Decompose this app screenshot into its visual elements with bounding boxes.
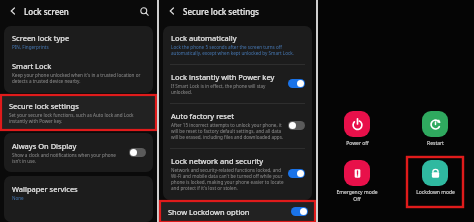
button[interactable]: Wallpaper services [4,180,153,205]
staticText: Lock instantly with Power key [171,72,275,82]
button[interactable]: Always On Display [4,137,153,168]
staticText: Lock network and security [171,156,264,166]
button[interactable]: Secure lock settings [1,97,156,128]
staticText: Lock the phone 5 seconds after the scree… [171,44,305,56]
button[interactable]: Emergency mode [318,157,396,202]
button[interactable]: Power off [318,108,396,147]
staticText: Show Lockdown option [168,207,250,216]
button[interactable]: Show Lockdown option [160,203,315,220]
button[interactable]: Toggle on [291,207,308,216]
staticText: Show a clock and notifications when your… [12,152,125,164]
button[interactable]: Emergency mode [344,160,370,186]
button[interactable]: Search [137,4,151,18]
staticText: Always On Display [12,141,77,151]
button[interactable]: Lock automatically [163,29,312,60]
staticText: Lock screen [24,6,69,17]
staticText: Secure lock settings [183,6,259,17]
button[interactable]: Lock instantly with Power key [163,68,312,99]
button[interactable]: Toggle off [288,121,305,130]
button[interactable]: Screen lock type [4,29,153,54]
button[interactable]: Toggle off [129,148,146,157]
button[interactable]: Lockdown mode [422,160,448,186]
button[interactable]: Power off [344,111,370,137]
staticText: Power off [346,140,369,147]
button[interactable]: Back [6,4,20,18]
staticText: Auto factory reset [171,111,234,121]
button[interactable]: Toggle on [288,79,305,88]
button[interactable]: Toggle on [288,169,305,178]
staticText: Wallpaper services [12,184,78,194]
staticText: After 15 incorrect attempts to unlock yo… [171,122,284,140]
button[interactable]: Restart [422,111,448,137]
staticText: Smart Lock [12,61,52,71]
staticText: Secure lock settings [9,101,79,111]
staticText: None [12,195,24,201]
staticText: Lock automatically [171,33,237,43]
button[interactable]: Restart [396,108,474,147]
staticText: PIN, Fingerprints [12,44,49,50]
button[interactable]: Lock network and security [163,152,312,195]
staticText: If Smart Lock is in effect, the phone wi… [171,83,284,95]
button[interactable]: Smart Lock [4,57,153,88]
button[interactable]: Back [165,4,179,18]
staticText: Network and security-related functions l… [171,167,284,191]
staticText: Lockdown mode [416,189,455,196]
staticText: Keep your phone unlocked when it's in a … [12,72,146,84]
staticText: Screen lock type [12,33,70,43]
staticText: Set your secure lock functions, such as … [9,112,149,124]
button[interactable]: Auto factory reset [163,107,312,144]
staticText: Restart [427,140,444,147]
staticText: Emergency mode Off [336,189,378,202]
